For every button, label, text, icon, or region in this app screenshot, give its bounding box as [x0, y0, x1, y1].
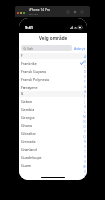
- staticText: F: [84, 80, 86, 84]
- button[interactable]: Frankrike: [19, 59, 87, 67]
- staticText: M: [83, 115, 86, 119]
- staticText: G: [21, 92, 24, 96]
- staticText: Guadeloupe: [21, 155, 42, 160]
- button[interactable]: Avbryt: [72, 46, 85, 51]
- button[interactable]: Fransk Guyana: [19, 67, 87, 75]
- staticText: G: [84, 85, 86, 89]
- button[interactable]: Grønland: [19, 145, 87, 153]
- staticText: Søk: [27, 46, 34, 51]
- button[interactable]: Søk: [21, 45, 72, 51]
- staticText: D: [84, 70, 86, 74]
- staticText: H: [84, 90, 86, 94]
- button[interactable]: Fransk Polynesia: [19, 75, 87, 83]
- staticText: B: [84, 60, 86, 64]
- staticText: V: [84, 160, 86, 164]
- staticText: Y: [84, 175, 86, 179]
- staticText: Færøyene: [21, 85, 38, 90]
- staticText: N: [83, 120, 86, 124]
- button[interactable]: Ghana: [19, 121, 87, 129]
- staticText: F: [21, 54, 23, 58]
- staticText: Frankrike: [21, 61, 37, 66]
- staticText: Gambia: [21, 107, 35, 112]
- button[interactable]: Guam: [19, 161, 87, 169]
- staticText: iOS 16.0: [29, 12, 39, 15]
- staticText: Grenada: [21, 139, 36, 144]
- staticText: Guam: [21, 163, 32, 168]
- staticText: O: [83, 125, 86, 129]
- button[interactable]: Take screenshot: [73, 10, 77, 14]
- staticText: R: [84, 140, 86, 144]
- staticText: Gibraltar: [21, 131, 36, 136]
- staticText: C: [84, 65, 86, 69]
- staticText: Gabon: [21, 99, 33, 104]
- button[interactable]: Rotate device: [66, 10, 70, 14]
- button[interactable]: More options: [80, 10, 84, 14]
- button[interactable]: Færøyene: [19, 83, 87, 91]
- staticText: T: [84, 150, 86, 154]
- staticText: P: [84, 130, 86, 134]
- staticText: E: [84, 75, 86, 79]
- staticText: Velg område: [39, 35, 68, 41]
- staticText: U: [84, 155, 86, 159]
- staticText: Ghana: [21, 123, 33, 128]
- staticText: L: [84, 110, 86, 114]
- staticText: S: [84, 145, 86, 149]
- staticText: Georgia: [21, 115, 35, 120]
- staticText: Fransk Guyana: [21, 69, 47, 74]
- button[interactable]: Guadeloupe: [19, 153, 87, 161]
- staticText: W: [83, 165, 86, 169]
- staticText: A: [84, 55, 86, 59]
- staticText: Grønland: [21, 147, 37, 152]
- staticText: Avbryt: [74, 46, 85, 51]
- button[interactable]: Grenada: [19, 137, 87, 145]
- button[interactable]: Gibraltar: [19, 129, 87, 137]
- staticText: iPhone 14 Pro: [29, 8, 51, 12]
- staticText: 9:41: [25, 25, 33, 30]
- button[interactable]: Gabon: [19, 97, 87, 105]
- button[interactable]: Georgia: [19, 113, 87, 121]
- button[interactable]: Gambia: [19, 105, 87, 113]
- staticText: Q: [83, 135, 86, 139]
- staticText: Fransk Polynesia: [21, 77, 50, 82]
- staticText: X: [84, 170, 86, 174]
- staticText: K: [84, 105, 86, 109]
- staticText: I: [84, 95, 85, 99]
